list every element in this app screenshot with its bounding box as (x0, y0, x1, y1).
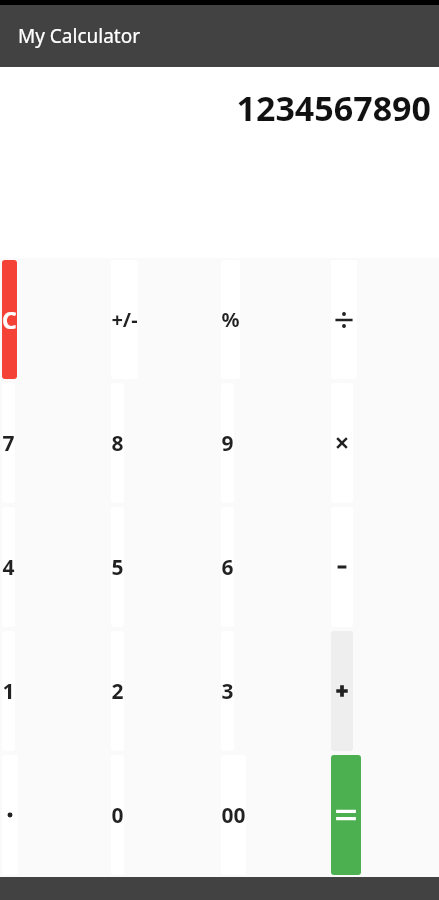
staticText: 7 (2, 429, 15, 458)
staticText: C (2, 304, 17, 335)
button[interactable]: 7 (2, 383, 15, 503)
staticText: 5 (111, 553, 124, 582)
button[interactable]: 0 (111, 755, 124, 875)
button[interactable]: Decimal point (2, 755, 18, 875)
staticText: 6 (221, 553, 234, 582)
staticText: % (221, 306, 240, 333)
button[interactable]: 5 (111, 507, 124, 627)
button[interactable]: 2 (111, 631, 124, 751)
button[interactable]: 6 (221, 507, 234, 627)
button[interactable]: Plus (331, 631, 353, 751)
staticText: +/- (111, 306, 138, 333)
button[interactable]: Divide (331, 260, 357, 379)
button[interactable]: 00 (221, 755, 246, 875)
staticText: 4 (2, 553, 15, 582)
staticText: 1234567890 (236, 85, 431, 131)
staticText: 3 (221, 677, 234, 706)
button[interactable]: +/- (111, 260, 138, 379)
button[interactable]: 3 (221, 631, 234, 751)
staticText: My Calculator (18, 23, 141, 49)
staticText: 1 (2, 677, 15, 706)
button[interactable]: 8 (111, 383, 124, 503)
button[interactable]: 9 (221, 383, 234, 503)
button[interactable]: Multiply (331, 383, 353, 503)
staticText: 00 (221, 801, 246, 830)
button[interactable]: 4 (2, 507, 15, 627)
staticText: 8 (111, 429, 124, 458)
staticText: 2 (111, 677, 124, 706)
staticText: 9 (221, 429, 234, 458)
staticText: 0 (111, 801, 124, 830)
button[interactable]: Minus (331, 507, 353, 627)
button[interactable]: Equals (331, 755, 361, 875)
button[interactable]: C (2, 260, 17, 379)
button[interactable]: 1 (2, 631, 15, 751)
button[interactable]: % (221, 260, 240, 379)
